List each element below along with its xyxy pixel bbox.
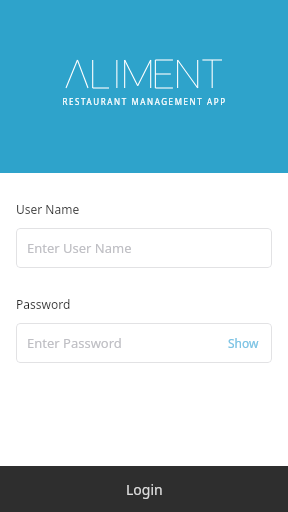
staticText: Password [16, 296, 71, 312]
button[interactable]: Enter User Name [16, 228, 272, 268]
staticText: RESTAURANT MANAGEMENT APP [62, 96, 227, 107]
button[interactable]: Login [0, 466, 288, 512]
button[interactable]: Enter Password [16, 323, 272, 363]
staticText: Enter Password [27, 334, 122, 352]
staticText: Show [228, 335, 259, 351]
staticText: Login [126, 480, 163, 499]
button[interactable]: Show [226, 333, 261, 353]
staticText: User Name [16, 201, 80, 217]
staticText: Enter User Name [27, 239, 132, 257]
